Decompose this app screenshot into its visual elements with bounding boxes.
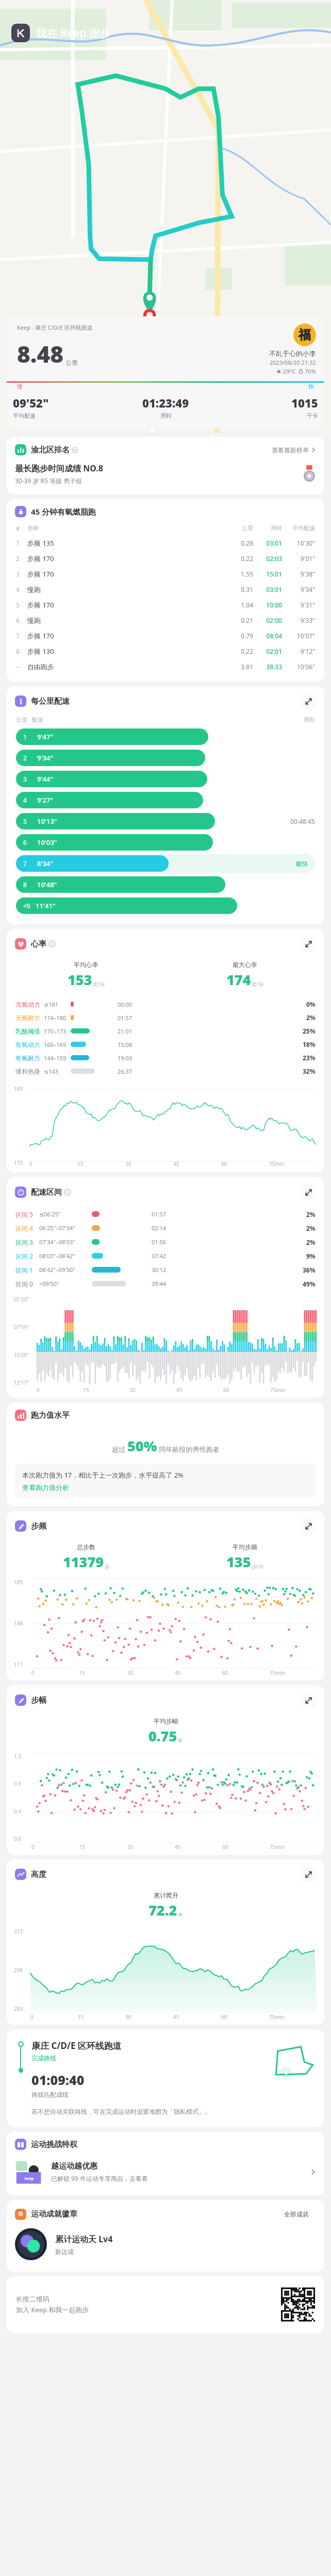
staticText: 11379 [63,1552,104,1571]
staticText: 用时 [253,524,282,532]
staticText: 步频 135 [27,538,225,548]
staticText: 21:01 [118,1027,303,1035]
staticText: 00:48:45 [290,817,315,825]
staticText: 9'27" [37,795,53,805]
staticText: 49% [303,1280,316,1288]
staticText: 0.75 [148,1726,177,1745]
button[interactable]: Expand [301,1518,316,1534]
staticText: 0 [29,1160,32,1167]
staticText: 运动成就徽章 [31,2209,77,2219]
staticText: 最长跑步时间成绩 NO.8 [15,463,103,474]
button[interactable]: Expand [301,693,316,709]
button[interactable]: 全部成就 [277,2207,316,2221]
staticText: 32% [303,1067,316,1075]
button[interactable]: Expand [301,1867,316,1882]
staticText: 45 [175,1843,181,1851]
staticText: 15:01 [253,570,282,578]
staticText: 区间 2 [15,1252,37,1260]
staticText: 快 [308,383,314,390]
staticText: 76% [303,367,316,375]
staticText: 72.2 [148,1901,177,1920]
staticText: 19:03 [118,1054,303,1062]
staticText: 2% [306,1238,316,1246]
staticText: 170–173 [44,1027,71,1035]
staticText: 26:37 [118,1067,303,1075]
staticText: 30 [129,1386,136,1394]
staticText: 9'31" [282,601,315,609]
staticText: 2023/08/20 21:32 [270,359,316,366]
staticText: 0 [31,1669,35,1676]
staticText: 185 [14,1579,23,1586]
staticText: ≥181 [44,1001,71,1008]
staticText: 0.0 [14,1835,22,1842]
staticText: 查看最新榜单 [272,446,309,454]
staticText: 无氧动力 [15,1001,41,1008]
staticText: 累计爬升 [154,1891,178,1899]
button[interactable]: 本次跑力值为 17，相比于上一次跑步，水平提高了 2% [22,1470,309,1492]
staticText: 298 [14,1967,23,1974]
staticText: <9 [23,902,30,910]
staticText: 步幅 [31,1696,46,1705]
staticText: 0.21 [225,616,253,624]
staticText: 10'06" [282,663,315,671]
staticText: 查看跑力值分析 [22,1483,69,1492]
staticText: 平均配速 [282,524,315,532]
staticText: 01:56 [152,1238,306,1246]
staticText: 45 [175,1669,181,1676]
button[interactable]: Expand [301,936,316,952]
staticText: 长按二维码 [16,2295,49,2303]
staticText: 15 [79,1669,86,1676]
staticText: >09'50" [39,1280,92,1287]
button[interactable]: Expand [301,1692,316,1708]
staticText: 00:00 [118,1001,306,1008]
staticText: 公里 [65,359,78,366]
staticText: 慢跑 [27,616,225,624]
staticText: 0.4 [14,1808,22,1815]
staticText: 9'47" [37,732,53,741]
button[interactable]: 累计运动天 Lv4 [15,2228,316,2260]
staticText: 次/分 [252,980,264,988]
staticText: 10'48" [37,880,57,889]
staticText: 9'34" [282,585,315,594]
staticText: 本次跑力值为 17，相比于上一次跑步，水平提高了 2% [22,1470,184,1480]
staticText: 总步数 [77,1543,95,1551]
button[interactable]: Expand [301,1184,316,1200]
staticText: 23% [303,1054,316,1062]
staticText: 07'59" [14,1324,29,1331]
staticText: 07:42 [152,1252,306,1260]
staticText: 区间 4 [15,1224,37,1232]
staticText: 135 [226,1552,251,1571]
staticText: 新达成 [55,2248,74,2256]
staticText: 03:01 [253,585,282,594]
button[interactable]: 渝北区排名 [15,444,316,455]
staticText: 5 [23,817,27,825]
staticText: 283 [14,2005,23,2012]
staticText: 公里 [16,716,27,723]
staticText: 39:44 [152,1280,303,1287]
staticText: 跑力值水平 [31,1411,70,1420]
staticText: 08'42"–09'50" [39,1266,92,1274]
staticText: 最快 [295,860,308,868]
staticText: 30 [127,1669,134,1676]
staticText: 步频 170 [27,631,225,640]
staticText: 3.81 [225,663,253,671]
staticText: 75min [269,2013,285,2021]
staticText: 心率 [31,939,46,949]
staticText: 有氧动力 [15,1041,41,1048]
staticText: 步 [105,1563,110,1570]
button[interactable]: keep [15,2157,316,2186]
staticText: 区间 3 [15,1238,37,1246]
staticText: 次/分 [93,980,105,988]
staticText: 07'34"–08'03" [39,1238,92,1246]
staticText: 60 [221,2013,227,2021]
staticText: 渝北区排名 [31,445,70,455]
staticText: keep [25,2176,34,2181]
staticText: 148 [14,1620,23,1627]
staticText: 名称 [27,524,225,532]
staticText: 若不想自动关联路线，可在完成运动时设置地图为「隐私模式」。 [31,2108,211,2115]
staticText: 12'17" [14,1379,29,1386]
staticText: 9'01" [282,554,315,563]
staticText: 区间 1 [15,1266,37,1274]
staticText: 配速区间 [31,1188,62,1197]
staticText: 我在 Keep 跑步 [36,26,111,41]
